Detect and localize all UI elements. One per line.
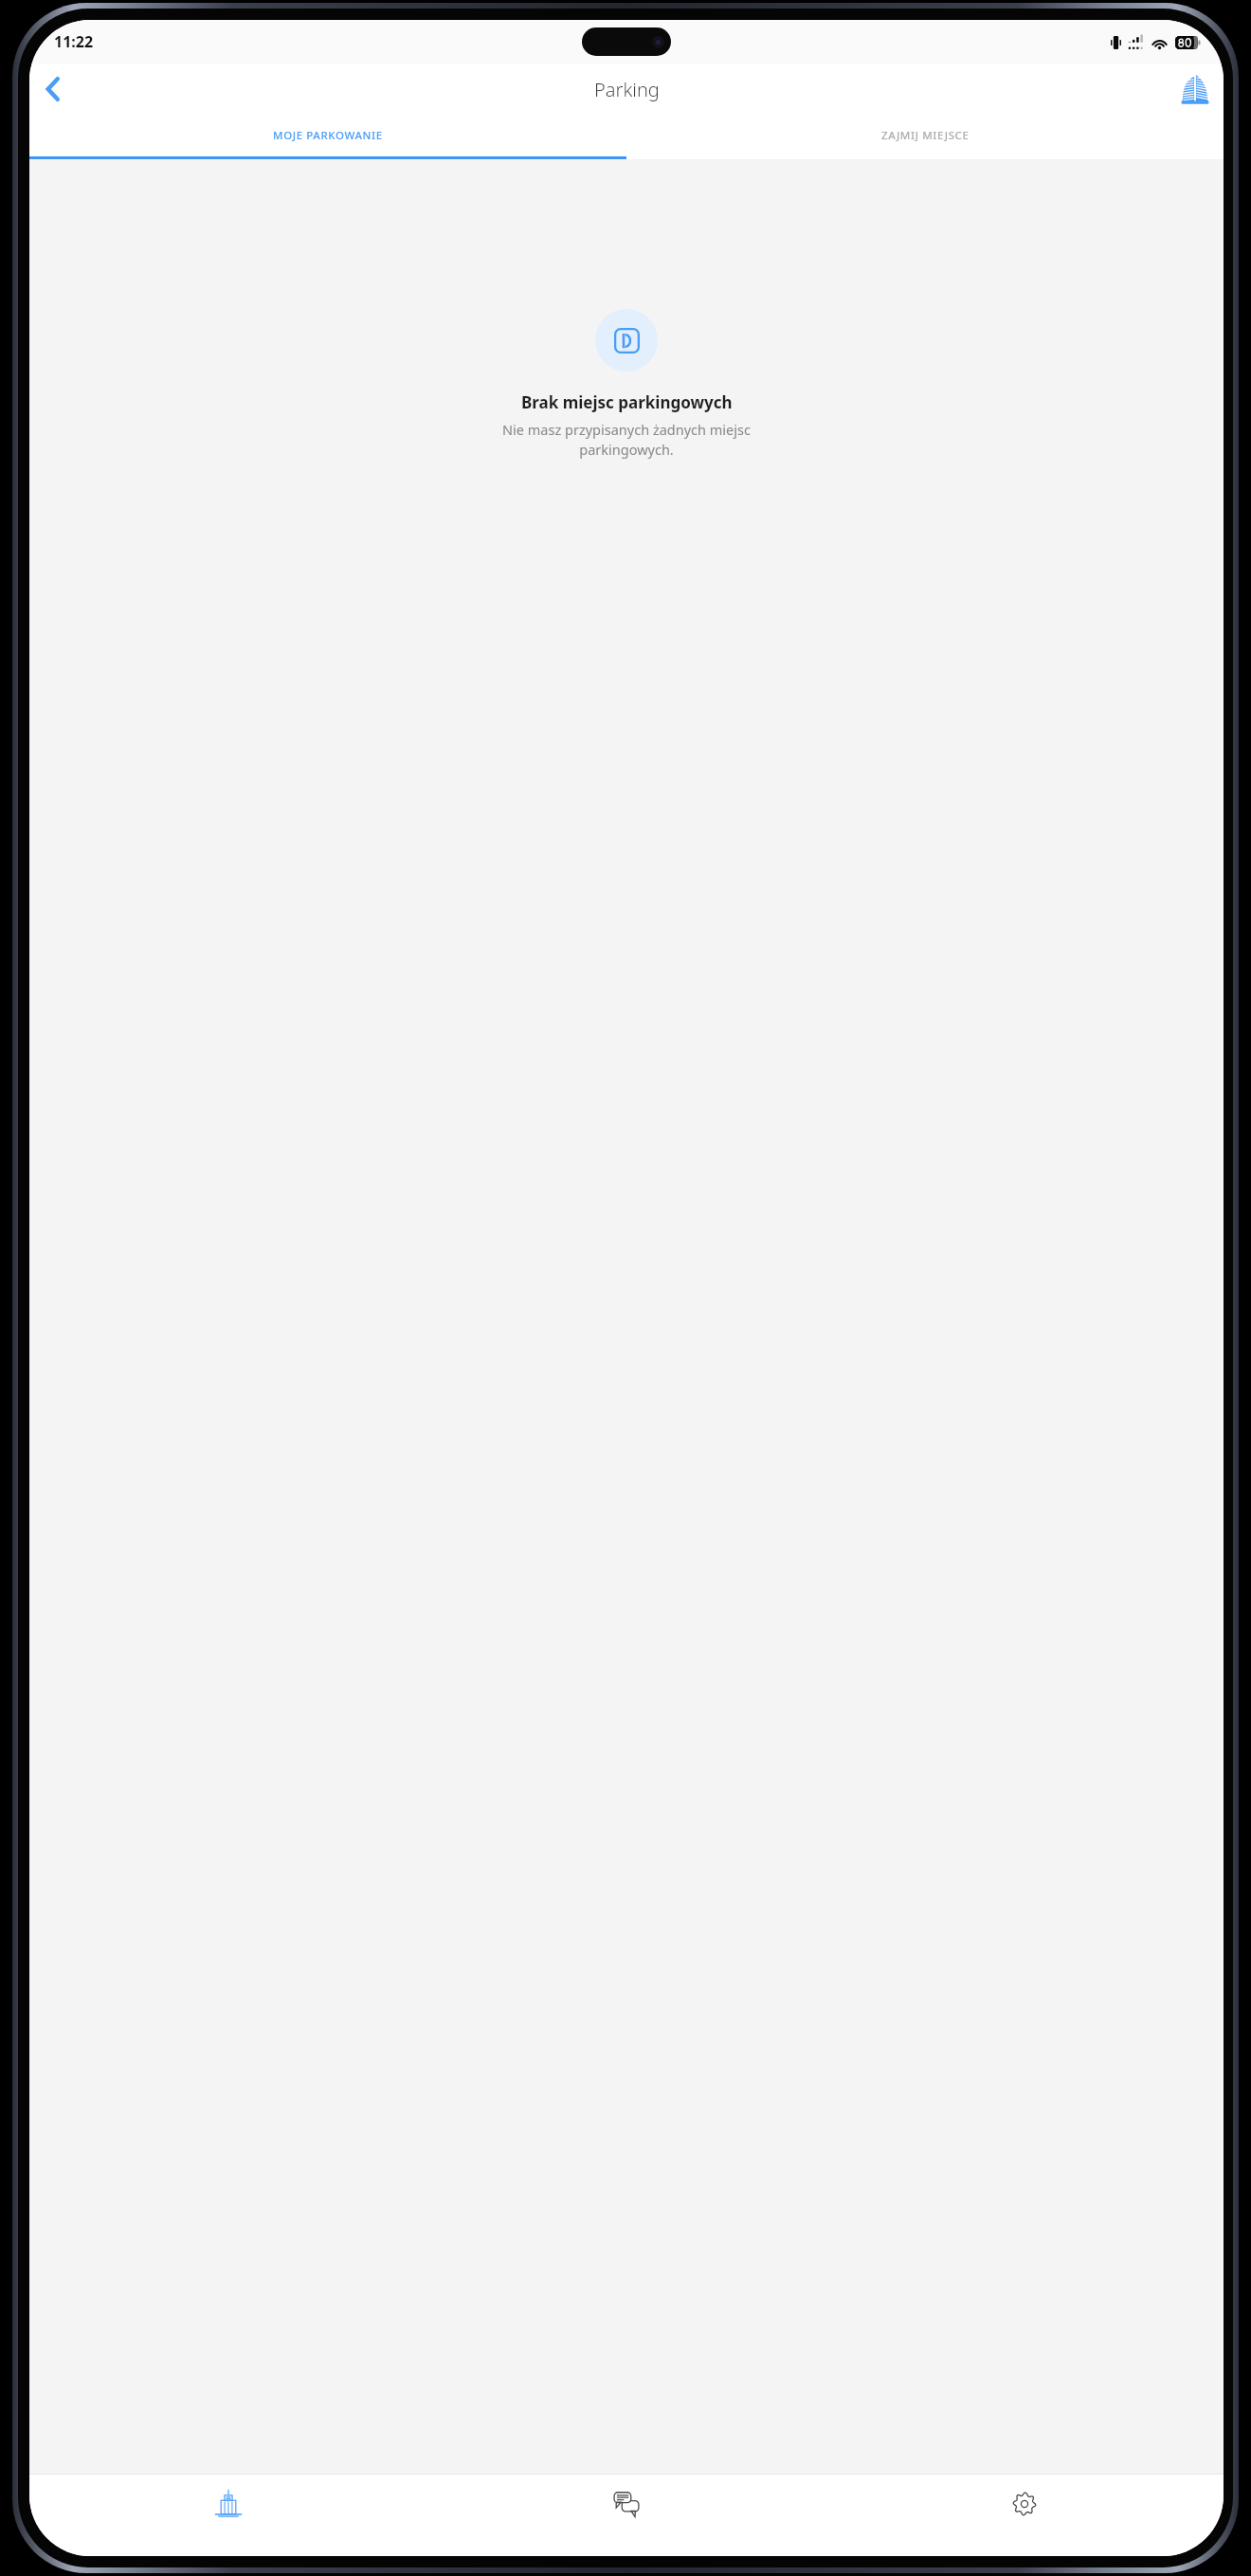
- staticText: MOJE PARKOWANIE: [273, 128, 383, 143]
- button[interactable]: Back: [29, 66, 75, 112]
- button[interactable]: ZAJMIJ MIEJSCE: [626, 114, 1224, 156]
- staticText: ZAJMIJ MIEJSCE: [881, 128, 970, 143]
- button[interactable]: Building: [1172, 66, 1218, 112]
- button[interactable]: MOJE PARKOWANIE: [29, 114, 626, 156]
- staticText: Nie masz przypisanych żadnych miejsc par…: [502, 420, 751, 460]
- staticText: Parking: [594, 77, 660, 102]
- button[interactable]: Messages: [427, 2475, 825, 2556]
- button[interactable]: Buildings: [29, 2475, 427, 2556]
- staticText: Brak miejsc parkingowych: [521, 391, 733, 413]
- button[interactable]: Settings: [825, 2475, 1224, 2556]
- staticText: 11:22: [54, 31, 94, 52]
